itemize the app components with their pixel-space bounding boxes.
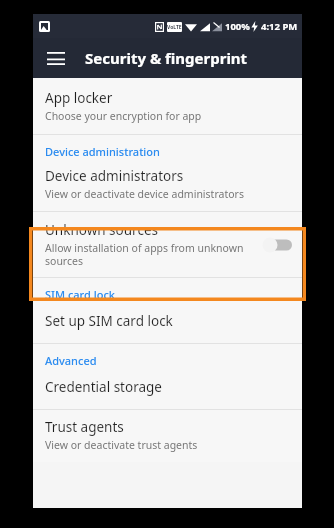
staticText: App locker <box>45 89 113 107</box>
staticText: Allow installation of apps from unknown … <box>45 241 254 268</box>
button[interactable]: App locker <box>33 78 302 134</box>
button[interactable]: Unknown sources toggle, off <box>262 236 292 254</box>
staticText: VoLTE <box>167 24 182 31</box>
staticText: Choose your encryption for app <box>45 109 202 123</box>
staticText: Unknown sources <box>45 221 158 239</box>
staticText: 4:12 PM <box>261 20 298 33</box>
staticText: Device administrators <box>45 167 184 185</box>
staticText: View or deactivate trust agents <box>45 438 198 452</box>
button[interactable]: Open navigation menu <box>39 41 73 75</box>
staticText: Set up SIM card lock <box>45 312 173 330</box>
button[interactable]: Credential storage <box>33 370 302 409</box>
staticText: View or deactivate device administrators <box>45 187 244 201</box>
staticText: SIM card lock <box>45 287 115 302</box>
button[interactable]: Trust agents <box>33 410 302 462</box>
button[interactable]: Unknown sources <box>33 212 302 277</box>
staticText: Security & fingerprint <box>85 48 248 68</box>
staticText: Trust agents <box>45 418 124 436</box>
staticText: Advanced <box>45 353 97 368</box>
staticText: Device administration <box>45 144 160 159</box>
staticText: 100% <box>225 20 250 33</box>
button[interactable]: Device administrators <box>33 161 302 211</box>
staticText: Credential storage <box>45 378 162 396</box>
button[interactable]: Set up SIM card lock <box>33 304 302 343</box>
